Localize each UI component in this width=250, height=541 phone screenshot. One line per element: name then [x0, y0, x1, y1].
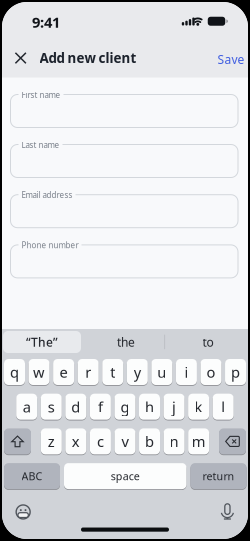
button[interactable]: v: [114, 428, 135, 454]
button[interactable]: l: [213, 394, 234, 420]
staticText: c: [97, 432, 104, 451]
staticText: q: [10, 362, 19, 382]
button[interactable]: y: [127, 359, 148, 385]
staticText: f: [98, 397, 103, 416]
button[interactable]: [4, 428, 31, 454]
button[interactable]: Email address: [10, 195, 238, 228]
button[interactable]: First name: [10, 94, 238, 127]
button[interactable]: ABC: [4, 463, 60, 489]
button[interactable]: Last name: [10, 144, 238, 177]
staticText: First name: [21, 89, 60, 100]
staticText: b: [145, 432, 154, 451]
staticText: x: [72, 432, 80, 451]
staticText: “The”: [26, 334, 58, 350]
staticText: d: [71, 397, 80, 416]
button[interactable]: to: [173, 331, 243, 353]
staticText: 9:41: [32, 12, 60, 32]
button[interactable]: s: [41, 394, 62, 420]
staticText: v: [121, 432, 128, 451]
button[interactable]: h: [139, 394, 160, 420]
staticText: m: [192, 432, 206, 451]
button[interactable]: j: [164, 394, 185, 420]
staticText: k: [195, 397, 203, 416]
button[interactable]: a: [16, 394, 37, 420]
button[interactable]: k: [188, 394, 209, 420]
button[interactable]: g: [114, 394, 135, 420]
button[interactable]: [9, 46, 32, 70]
staticText: t: [110, 362, 115, 382]
staticText: return: [202, 469, 234, 483]
button[interactable]: Save: [217, 47, 244, 71]
staticText: n: [170, 432, 179, 451]
button[interactable]: u: [151, 359, 172, 385]
staticText: u: [157, 362, 166, 382]
staticText: Save: [217, 51, 244, 67]
staticText: z: [48, 432, 55, 451]
button[interactable]: d: [65, 394, 86, 420]
button[interactable]: e: [53, 359, 74, 385]
staticText: h: [145, 397, 154, 416]
button[interactable]: space: [64, 463, 186, 489]
staticText: Last name: [21, 139, 59, 150]
staticText: y: [134, 362, 141, 382]
staticText: s: [48, 397, 55, 416]
staticText: l: [221, 397, 225, 416]
button[interactable]: x: [65, 428, 86, 454]
button[interactable]: n: [164, 428, 185, 454]
button[interactable]: t: [102, 359, 123, 385]
staticText: ABC: [21, 469, 42, 483]
button[interactable]: [219, 428, 246, 454]
staticText: space: [111, 469, 140, 483]
button[interactable]: return: [190, 463, 246, 489]
staticText: o: [206, 362, 215, 382]
staticText: w: [33, 362, 45, 382]
staticText: to: [202, 334, 213, 350]
staticText: Add new client: [39, 49, 136, 67]
button[interactable]: w: [29, 359, 50, 385]
staticText: Phone number: [21, 240, 78, 250]
staticText: g: [120, 397, 129, 416]
staticText: the: [117, 334, 135, 350]
button[interactable]: m: [188, 428, 209, 454]
button[interactable]: “The”: [3, 331, 81, 353]
button[interactable]: p: [225, 359, 246, 385]
staticText: Email address: [21, 190, 72, 200]
button[interactable]: the: [91, 331, 161, 353]
button[interactable]: [217, 499, 238, 524]
staticText: i: [184, 362, 188, 382]
button[interactable]: i: [176, 359, 197, 385]
button[interactable]: q: [4, 359, 25, 385]
button[interactable]: r: [78, 359, 99, 385]
staticText: j: [172, 397, 176, 416]
button[interactable]: c: [90, 428, 111, 454]
staticText: e: [60, 362, 68, 382]
button[interactable]: b: [139, 428, 160, 454]
staticText: p: [231, 362, 240, 382]
button[interactable]: o: [200, 359, 221, 385]
staticText: a: [23, 397, 31, 416]
button[interactable]: z: [41, 428, 62, 454]
button[interactable]: [11, 500, 35, 524]
button[interactable]: f: [90, 394, 111, 420]
staticText: r: [85, 362, 91, 382]
button[interactable]: Phone number: [10, 245, 238, 278]
